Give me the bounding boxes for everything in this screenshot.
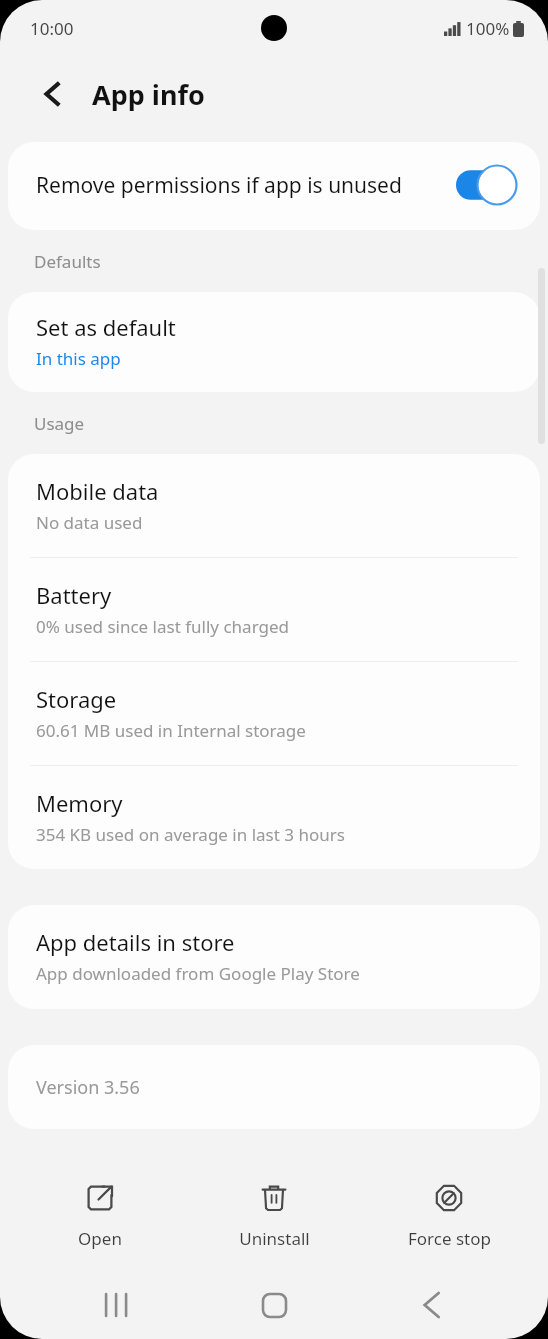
button[interactable]: Uninstall [199,1173,349,1258]
staticText: In this app [36,347,121,370]
staticText: App info [92,76,205,113]
staticText: Memory [36,788,123,818]
staticText: Set as default [36,312,176,342]
staticText: 0% used since last fully charged [36,615,289,638]
button[interactable]: Recents [77,1271,157,1339]
staticText: Defaults [34,250,101,273]
staticText: App downloaded from Google Play Store [36,962,360,985]
staticText: Storage [36,684,117,714]
button[interactable]: Remove permissions if app is unused [8,142,540,230]
staticText: Battery [36,580,112,610]
staticText: App details in store [36,927,235,957]
staticText: 354 KB used on average in last 3 hours [36,823,345,846]
button[interactable]: Back [391,1271,471,1339]
staticText: Version 3.56 [36,1075,140,1100]
button[interactable]: Battery [8,558,540,661]
staticText: 100% [466,17,510,40]
button[interactable]: Memory [8,766,540,869]
staticText: Mobile data [36,476,159,506]
button[interactable]: Force stop [374,1173,524,1258]
staticText: Usage [34,412,85,435]
button[interactable]: Storage [8,662,540,765]
staticText: 60.61 MB used in Internal storage [36,719,306,742]
button[interactable]: Home [234,1271,314,1339]
staticText: Force stop [408,1227,491,1250]
button[interactable]: Remove permissions toggle [456,164,518,206]
staticText: Open [78,1227,122,1250]
staticText: Remove permissions if app is unused [36,171,442,200]
button[interactable]: Mobile data [8,454,540,557]
button[interactable]: Open [25,1173,175,1258]
staticText: No data used [36,511,143,534]
staticText: Uninstall [239,1227,310,1250]
button[interactable]: App details in store [8,905,540,1009]
staticText: 10:00 [30,17,74,40]
button[interactable]: Back [30,71,76,117]
button[interactable]: Set as default [8,292,540,392]
